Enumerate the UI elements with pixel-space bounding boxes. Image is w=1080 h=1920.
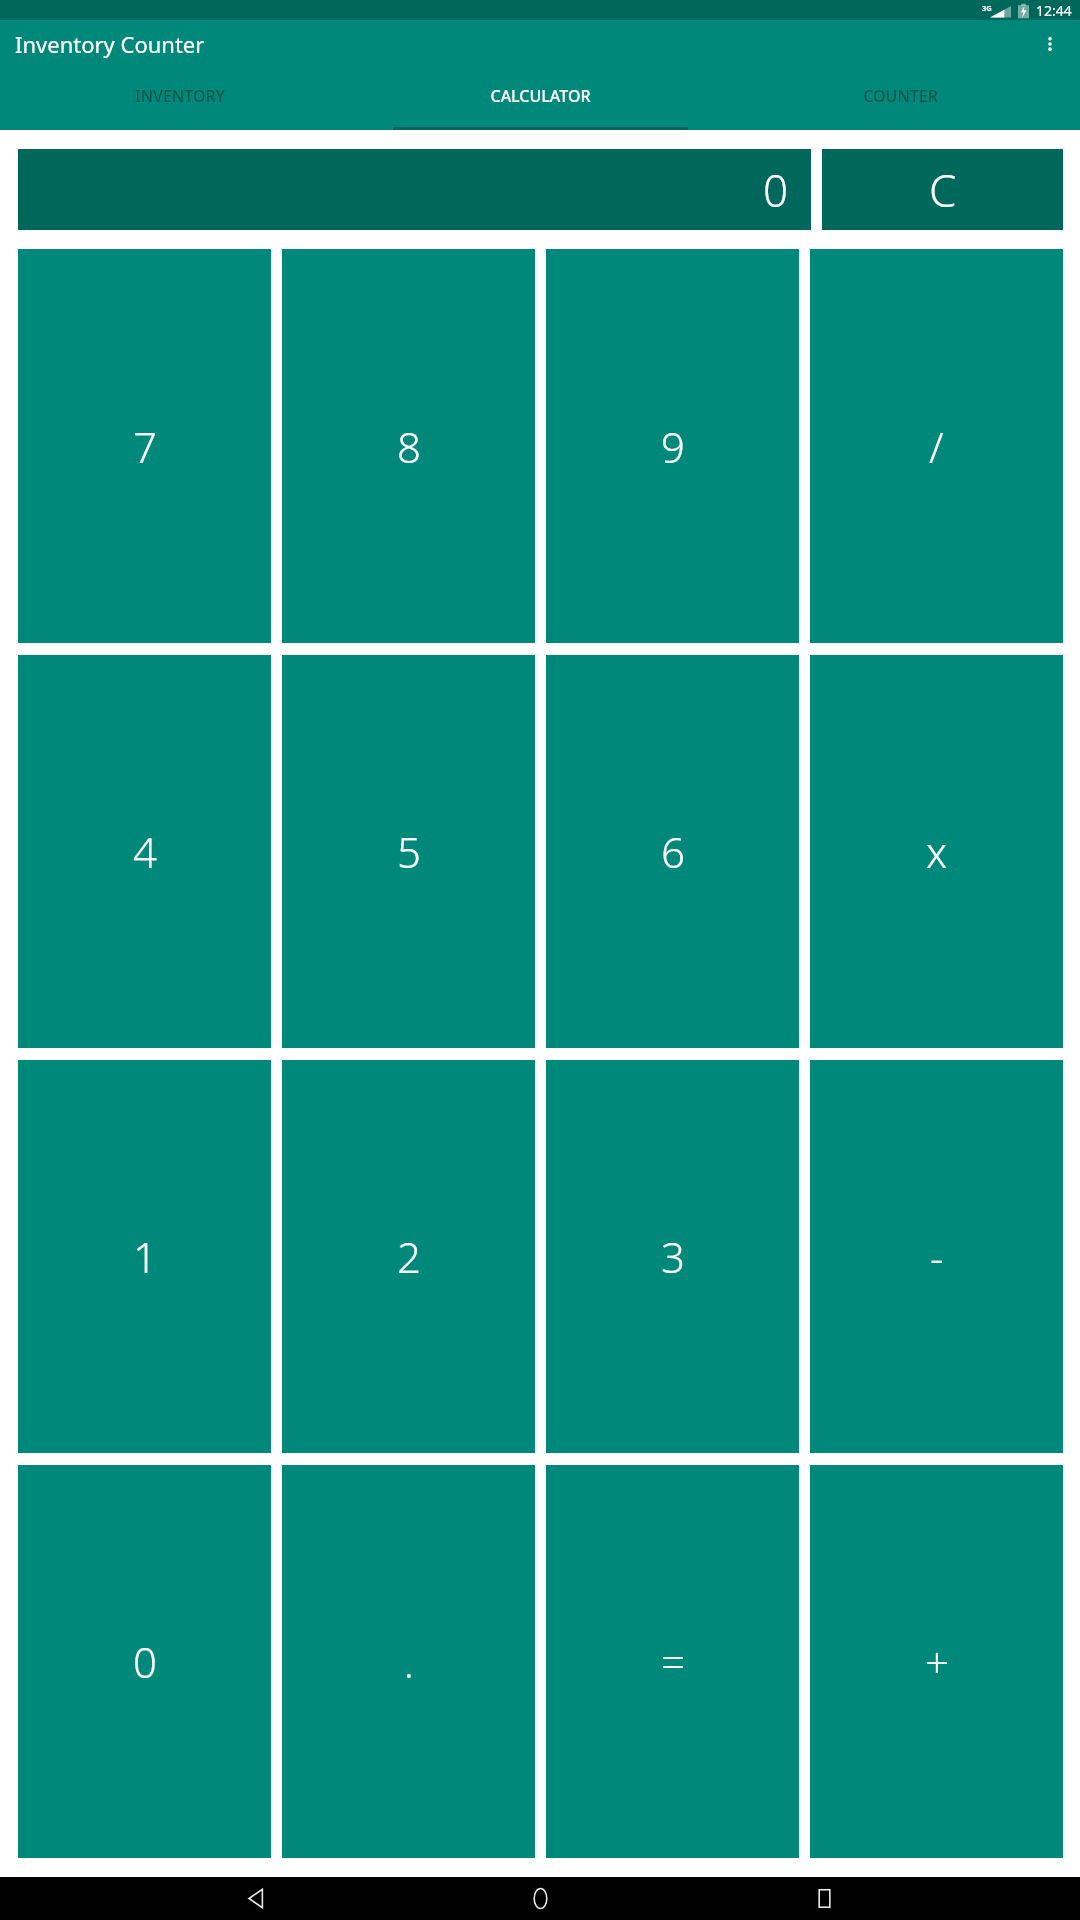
staticText: 0	[763, 160, 789, 220]
button[interactable]: C	[822, 149, 1063, 230]
button[interactable]: /	[810, 249, 1063, 643]
button[interactable]: -	[810, 1060, 1063, 1453]
staticText: C	[929, 160, 957, 220]
button[interactable]: =	[546, 1465, 799, 1858]
button[interactable]: Back	[228, 1877, 284, 1920]
button[interactable]: 7	[18, 249, 271, 643]
staticText: 4	[133, 823, 157, 880]
button[interactable]: More options	[1030, 24, 1070, 64]
staticText: 3	[661, 1228, 685, 1285]
button[interactable]: CALCULATOR	[360, 67, 720, 130]
staticText: COUNTER	[863, 85, 938, 107]
staticText: Inventory Counter	[15, 29, 205, 59]
staticText: 1	[133, 1228, 157, 1285]
staticText: 3G	[982, 3, 992, 13]
staticText: =	[661, 1633, 685, 1690]
button[interactable]: 0	[18, 1465, 271, 1858]
staticText: 7	[133, 418, 157, 475]
button[interactable]: INVENTORY	[0, 67, 360, 130]
button[interactable]: 9	[546, 249, 799, 643]
staticText: INVENTORY	[135, 85, 225, 107]
button[interactable]: 5	[282, 655, 535, 1048]
button[interactable]: 6	[546, 655, 799, 1048]
staticText: x	[926, 823, 948, 880]
button[interactable]: 2	[282, 1060, 535, 1453]
staticText: 2	[397, 1228, 421, 1285]
staticText: -	[930, 1228, 944, 1285]
button[interactable]: 4	[18, 655, 271, 1048]
staticText: /	[929, 418, 944, 475]
staticText: +	[925, 1633, 949, 1690]
staticText: 5	[397, 823, 421, 880]
button[interactable]: 3	[546, 1060, 799, 1453]
staticText: .	[404, 1635, 414, 1689]
button[interactable]: +	[810, 1465, 1063, 1858]
staticText: 6	[661, 823, 685, 880]
button[interactable]: x	[810, 655, 1063, 1048]
staticText: 8	[397, 418, 421, 475]
staticText: CALCULATOR	[490, 85, 591, 107]
staticText: 0	[133, 1633, 157, 1690]
button[interactable]: COUNTER	[720, 67, 1080, 130]
button[interactable]: Home	[512, 1877, 568, 1920]
staticText: 9	[661, 418, 685, 475]
staticText: 12:44	[1036, 1, 1072, 20]
button[interactable]: 8	[282, 249, 535, 643]
button[interactable]: 0	[18, 149, 811, 230]
button[interactable]: Recent apps	[796, 1877, 852, 1920]
button[interactable]: 1	[18, 1060, 271, 1453]
